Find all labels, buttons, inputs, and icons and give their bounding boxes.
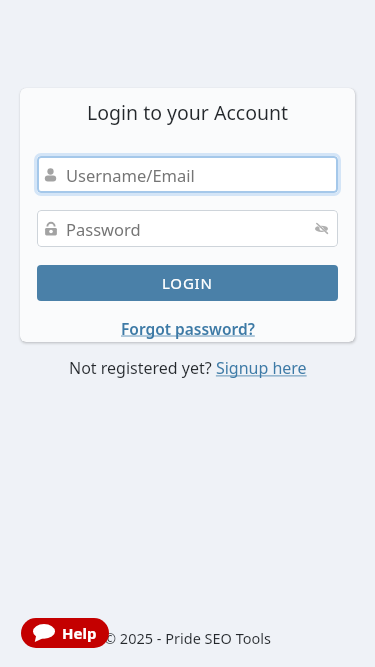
button[interactable]: Password	[37, 210, 338, 247]
staticText: Password	[66, 218, 141, 240]
button[interactable]: Username/Email	[37, 156, 338, 193]
button[interactable]: Forgot password?	[121, 318, 255, 339]
staticText: Username/Email	[66, 164, 195, 186]
staticText: LOGIN	[162, 273, 213, 293]
button[interactable]: LOGIN	[37, 265, 338, 301]
button[interactable]: Help	[21, 618, 109, 648]
staticText: Login to your Account	[87, 99, 289, 126]
staticText: Help	[62, 623, 97, 643]
staticText: © 2025 - Pride SEO Tools	[104, 628, 271, 648]
button[interactable]: Not registered yet? Signup here	[69, 357, 307, 379]
